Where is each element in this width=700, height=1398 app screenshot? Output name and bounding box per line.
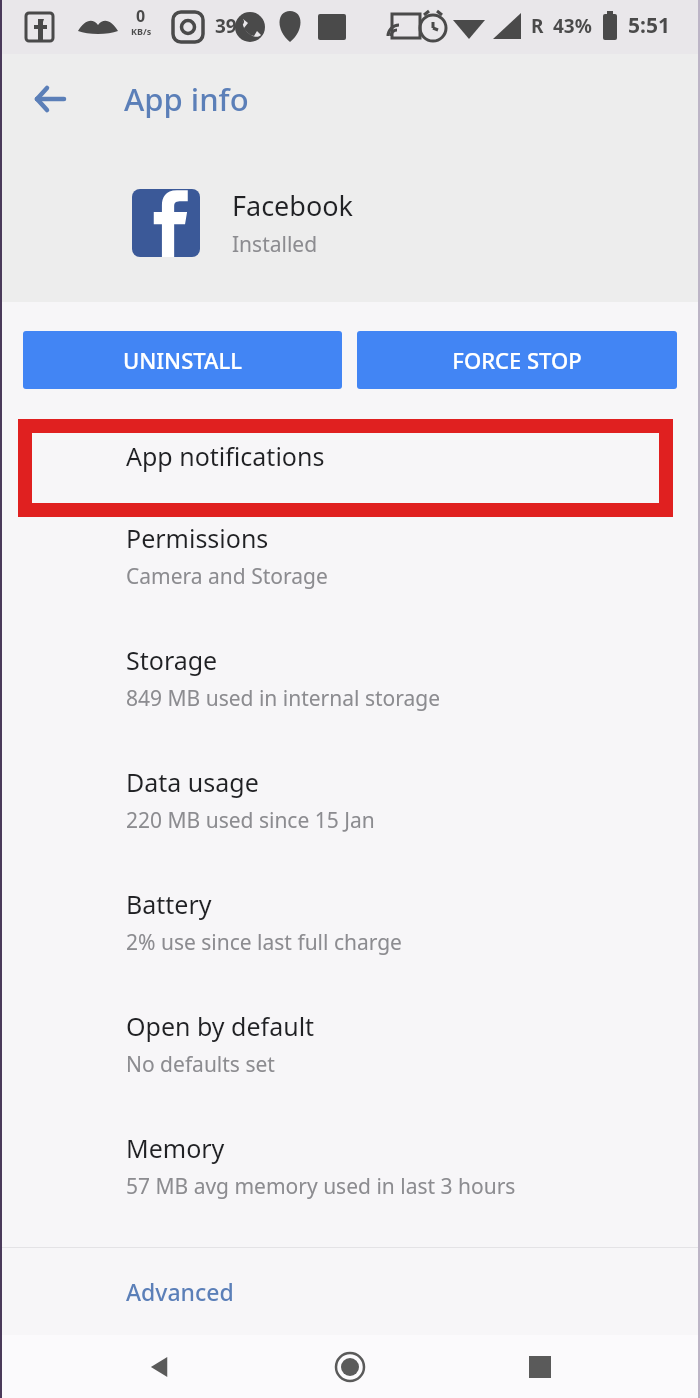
button[interactable]: Back [18, 67, 82, 131]
staticText: 0 [136, 5, 146, 27]
staticText: Data usage [126, 765, 259, 799]
staticText: 57 MB avg memory used in last 3 hours [126, 1172, 516, 1201]
button[interactable]: FORCE STOP [357, 331, 677, 389]
button[interactable]: Battery [0, 861, 700, 983]
staticText: Facebook [232, 187, 354, 224]
button[interactable]: App notifications [0, 417, 700, 495]
button[interactable]: Facebook [0, 144, 700, 302]
staticText: Memory [126, 1131, 225, 1165]
button[interactable]: Memory [0, 1105, 700, 1227]
staticText: Advanced [126, 1276, 234, 1307]
staticText: Open by default [126, 1009, 315, 1043]
button[interactable]: Home [320, 1337, 380, 1397]
button[interactable]: UNINSTALL [23, 331, 342, 389]
staticText: App notifications [126, 439, 325, 473]
staticText: UNINSTALL [123, 345, 242, 375]
staticText: 43% [553, 13, 592, 39]
button[interactable]: Recent apps [510, 1337, 570, 1397]
button[interactable]: Open by default [0, 983, 700, 1105]
staticText: 220 MB used since 15 Jan [126, 806, 375, 835]
staticText: Battery [126, 887, 212, 921]
button[interactable]: Back [130, 1337, 190, 1397]
staticText: 849 MB used in internal storage [126, 684, 441, 713]
button[interactable]: Permissions [0, 495, 700, 617]
staticText: Installed [232, 230, 318, 259]
staticText: App info [124, 78, 249, 120]
staticText: 2% use since last full charge [126, 928, 402, 957]
staticText: Permissions [126, 521, 269, 555]
staticText: 39° [215, 13, 245, 39]
staticText: R [531, 13, 544, 39]
button[interactable]: Advanced [0, 1248, 700, 1335]
staticText: 5:51 [628, 11, 670, 40]
staticText: Camera and Storage [126, 562, 328, 591]
staticText: Storage [126, 643, 218, 677]
staticText: No defaults set [126, 1050, 275, 1079]
staticText: KB/s [131, 25, 152, 37]
staticText: FORCE STOP [452, 345, 582, 375]
button[interactable]: Storage [0, 617, 700, 739]
button[interactable]: Data usage [0, 739, 700, 861]
